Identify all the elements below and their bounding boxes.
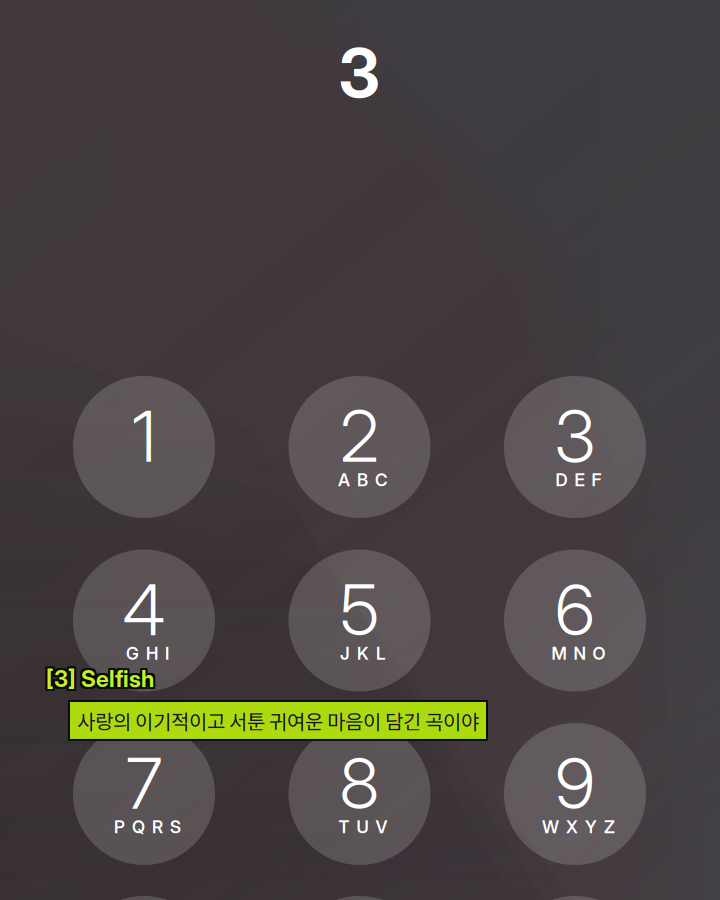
staticText: 5 <box>340 567 379 652</box>
button[interactable]: 3 <box>504 376 646 518</box>
staticText: ABC <box>338 469 388 490</box>
staticText: 9 <box>555 740 595 826</box>
staticText: JKL <box>340 643 386 664</box>
staticText: [3] Selfish <box>48 663 156 690</box>
staticText: [3] Selfish <box>44 667 152 694</box>
staticText: [3] Selfish <box>48 667 156 694</box>
staticText: DEF <box>555 469 601 490</box>
staticText: 3 <box>338 33 379 113</box>
staticText: WXYZ <box>542 816 615 837</box>
staticText: 4 <box>122 567 165 652</box>
staticText: 3 <box>554 393 595 479</box>
button[interactable]: 8 <box>288 723 430 865</box>
staticText: [3] Selfish <box>44 665 152 692</box>
button[interactable]: 4 <box>73 549 215 691</box>
staticText: 2 <box>340 393 379 479</box>
button[interactable]: 2 <box>288 376 430 518</box>
staticText: 1 <box>132 393 156 479</box>
button[interactable]: 6 <box>504 549 646 691</box>
button[interactable]: 1 <box>73 376 215 518</box>
staticText: [3] Selfish <box>46 665 154 692</box>
staticText: [3] Selfish <box>46 667 154 694</box>
button[interactable]: Emergency <box>73 896 215 900</box>
staticText: MNO <box>551 643 605 664</box>
staticText: [3] Selfish <box>48 665 156 692</box>
staticText: [3] Selfish <box>46 663 154 690</box>
staticText: 6 <box>555 567 595 652</box>
staticText: TUV <box>338 816 387 837</box>
button[interactable]: 0 <box>288 896 430 900</box>
staticText: 7 <box>126 740 162 826</box>
staticText: [3] Selfish <box>44 663 152 690</box>
button[interactable]: 9 <box>504 723 646 865</box>
button[interactable]: 5 <box>288 549 430 691</box>
button[interactable]: 7 <box>73 723 215 865</box>
staticText: GHI <box>126 643 169 664</box>
staticText: 사랑의 이기적이고 서툰 귀여운 마음이 담긴 곡이야 <box>77 706 479 735</box>
button[interactable]: Delete <box>504 896 646 900</box>
staticText: 8 <box>339 740 379 826</box>
staticText: PQRS <box>114 816 181 837</box>
